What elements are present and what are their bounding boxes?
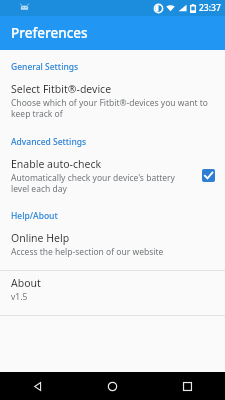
button[interactable]: Online Help xyxy=(0,226,225,261)
staticText: Enable auto-check xyxy=(11,157,102,171)
button[interactable]: Enable auto-check xyxy=(0,152,225,197)
staticText: Help/About xyxy=(11,210,225,222)
staticText: About xyxy=(11,276,41,290)
button[interactable]: Home xyxy=(75,372,150,400)
staticText: General Settings xyxy=(11,61,225,73)
button[interactable]: About xyxy=(0,271,225,306)
button[interactable]: Back xyxy=(0,372,75,400)
staticText: Select Fitbit®-device xyxy=(11,82,112,96)
staticText: Online Help xyxy=(11,231,70,245)
staticText: Automatically check your device's batter… xyxy=(11,172,175,194)
button[interactable]: Recent apps xyxy=(150,372,225,400)
button[interactable]: Enable auto-check xyxy=(201,168,215,182)
staticText: Choose which of your Fitbit®-devices you… xyxy=(11,97,209,119)
staticText: Access the help-section of our website xyxy=(11,246,164,258)
staticText: Preferences xyxy=(11,24,88,42)
staticText: v1.5 xyxy=(11,291,28,303)
button[interactable]: Select Fitbit®-device xyxy=(0,77,225,122)
staticText: 23:37 xyxy=(199,2,221,14)
staticText: Advanced Settings xyxy=(11,136,225,148)
